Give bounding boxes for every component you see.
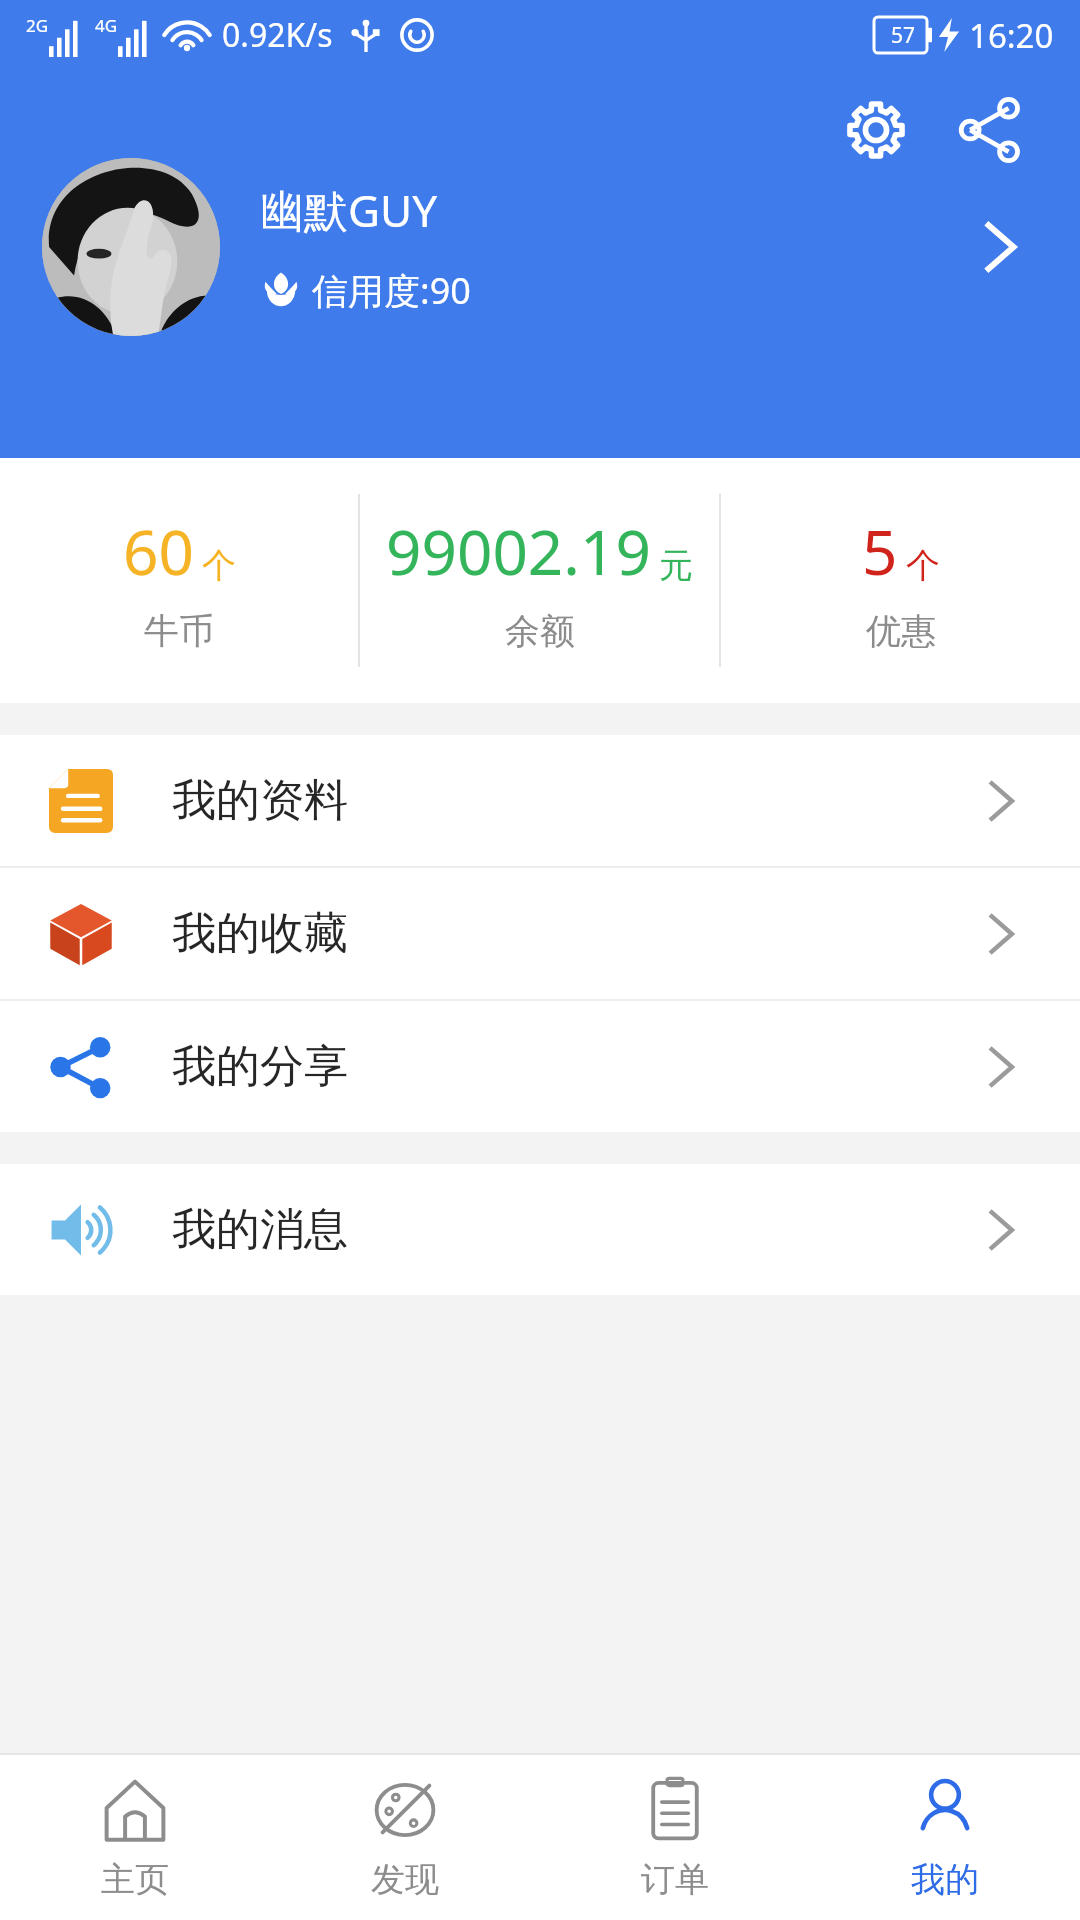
staticText: 我的资料 [172,773,348,828]
button[interactable]: 主页 [0,1755,270,1920]
button[interactable]: 我的收藏 [0,868,1080,999]
button[interactable]: 99002.19 [360,458,719,703]
button[interactable]: 我的资料 [0,735,1080,866]
button[interactable]: 发现 [270,1755,540,1920]
staticText: 99002.19 [386,509,651,593]
staticText: 牛币 [144,609,214,653]
staticText: 元 [659,544,693,587]
staticText: 发现 [371,1858,439,1901]
button[interactable]: 我的消息 [0,1164,1080,1295]
staticText: 优惠 [866,609,936,653]
staticText: 余额 [505,609,575,653]
staticText: 主页 [101,1858,169,1901]
staticText: 个 [906,544,940,587]
button[interactable]: Settings [830,84,922,176]
button[interactable]: 60 [0,458,358,703]
staticText: 16:20 [969,13,1054,58]
staticText: 我的消息 [172,1202,348,1257]
staticText: 幽默GUY [260,180,438,240]
staticText: 个 [202,544,236,587]
staticText: 5 [862,509,898,593]
staticText: 4G [95,14,118,37]
button[interactable]: 幽默GUY [0,158,1080,336]
staticText: 订单 [641,1858,709,1901]
button[interactable]: 我的 [810,1755,1080,1920]
button[interactable]: 5 [721,458,1080,703]
staticText: 信用度:90 [312,266,471,315]
staticText: 57 [891,21,916,50]
staticText: 我的收藏 [172,906,348,961]
staticText: 60 [123,509,194,593]
staticText: 0.92K/s [222,13,333,57]
button[interactable]: Share [944,84,1036,176]
staticText: 我的 [911,1858,979,1901]
staticText: 2G [26,14,49,37]
staticText: 我的分享 [172,1039,348,1094]
button[interactable]: 订单 [540,1755,810,1920]
button[interactable]: 我的分享 [0,1001,1080,1132]
